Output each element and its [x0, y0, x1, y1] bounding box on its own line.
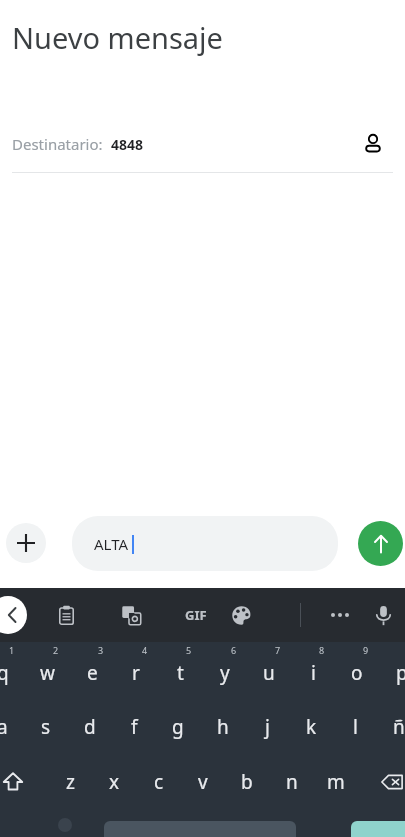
button[interactable]: j: [245, 699, 289, 754]
staticText: h: [217, 714, 229, 740]
button[interactable]: k: [289, 699, 333, 754]
button[interactable]: z: [48, 754, 92, 809]
button[interactable]: Portapapeles: [48, 597, 84, 633]
button[interactable]: Contactos: [353, 124, 393, 164]
button[interactable]: [351, 821, 405, 837]
staticText: 3: [98, 644, 104, 656]
staticText: ñ: [393, 714, 405, 740]
button[interactable]: 4: [114, 642, 158, 699]
button[interactable]: 2: [25, 642, 69, 699]
staticText: 4848: [111, 135, 144, 154]
staticText: u: [263, 660, 275, 686]
button[interactable]: 1: [0, 642, 25, 699]
staticText: a: [0, 714, 8, 740]
staticText: b: [241, 769, 253, 795]
staticText: x: [109, 769, 120, 795]
button[interactable]: 8: [291, 642, 335, 699]
button[interactable]: d: [68, 699, 112, 754]
button[interactable]: n: [270, 754, 314, 809]
staticText: f: [131, 714, 138, 740]
button[interactable]: ALTA: [72, 516, 338, 571]
button[interactable]: a: [0, 699, 24, 754]
button[interactable]: GIF: [178, 597, 214, 633]
button[interactable]: l: [333, 699, 377, 754]
staticText: s: [41, 714, 51, 740]
staticText: z: [66, 769, 75, 795]
button[interactable]: Más opciones: [322, 597, 358, 633]
button[interactable]: Voz: [365, 597, 401, 633]
staticText: 9: [363, 644, 369, 656]
staticText: 4: [142, 644, 148, 656]
button[interactable]: [58, 818, 72, 832]
button[interactable]: ñ: [377, 699, 405, 754]
button[interactable]: v: [181, 754, 225, 809]
button[interactable]: g: [156, 699, 200, 754]
button[interactable]: 3: [70, 642, 114, 699]
staticText: g: [172, 714, 184, 740]
button[interactable]: b: [225, 754, 269, 809]
button[interactable]: Mayúsculas: [0, 754, 35, 809]
staticText: 8: [319, 644, 325, 656]
staticText: Nuevo mensaje: [12, 18, 223, 57]
button[interactable]: Enviar: [358, 521, 403, 566]
button[interactable]: Adjuntar: [6, 523, 46, 563]
button[interactable]: 5: [158, 642, 202, 699]
staticText: l: [353, 714, 358, 740]
staticText: y: [220, 660, 230, 686]
staticText: GIF: [185, 606, 207, 624]
staticText: k: [306, 714, 317, 740]
staticText: q: [0, 660, 9, 686]
button[interactable]: 6: [203, 642, 247, 699]
button[interactable]: c: [137, 754, 181, 809]
staticText: 7: [275, 644, 281, 656]
button[interactable]: Temas: [223, 597, 259, 633]
button[interactable]: Traducir: [113, 597, 149, 633]
button[interactable]: f: [112, 699, 156, 754]
staticText: 6: [231, 644, 237, 656]
button[interactable]: 7: [247, 642, 291, 699]
staticText: w: [40, 660, 55, 686]
button[interactable]: 0: [380, 642, 405, 699]
button[interactable]: m: [314, 754, 358, 809]
staticText: o: [351, 660, 363, 686]
staticText: r: [132, 660, 140, 686]
staticText: i: [311, 660, 316, 686]
button[interactable]: s: [24, 699, 68, 754]
staticText: 5: [186, 644, 192, 656]
staticText: m: [327, 769, 345, 795]
button[interactable]: 9: [335, 642, 379, 699]
staticText: p: [396, 660, 405, 686]
staticText: ALTA: [94, 534, 129, 554]
staticText: Destinatario:: [12, 134, 103, 154]
button[interactable]: x: [92, 754, 136, 809]
staticText: v: [198, 769, 208, 795]
staticText: 2: [53, 644, 59, 656]
staticText: 1: [9, 644, 15, 656]
staticText: d: [84, 714, 96, 740]
staticText: j: [265, 714, 270, 740]
staticText: t: [177, 660, 184, 686]
staticText: n: [286, 769, 298, 795]
staticText: c: [154, 769, 164, 795]
button[interactable]: Atrás: [0, 596, 27, 634]
staticText: e: [87, 660, 98, 686]
button[interactable]: Borrar: [370, 754, 405, 809]
button[interactable]: h: [201, 699, 245, 754]
